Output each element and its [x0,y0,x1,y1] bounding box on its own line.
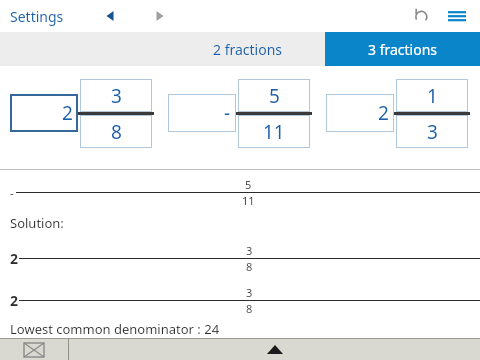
button[interactable]: Next [146,2,174,30]
staticText: 5 [269,83,280,109]
button[interactable]: 8 [80,115,152,148]
staticText: 8 [246,301,253,316]
staticText: 11 [242,193,255,208]
staticText: 8 [111,119,122,145]
button[interactable]: Undo [406,1,436,31]
button[interactable]: 11 [238,115,310,148]
staticText: 8 [246,259,253,274]
staticText: 2 [10,249,19,268]
staticText: 3 [427,119,438,145]
button[interactable]: 3 fractions [325,32,480,66]
staticText: 2 [378,100,389,126]
button[interactable]: - [168,94,236,132]
button[interactable]: 2 [10,94,78,132]
staticText: 11 [263,119,285,145]
button[interactable]: 3 [80,79,152,112]
staticText: Settings [10,7,64,26]
button[interactable]: Mail [0,339,68,360]
button[interactable]: Previous [96,2,124,30]
button[interactable]: Expand [69,339,480,360]
staticText: Lowest common denominator : 24 [10,320,220,338]
button[interactable]: Settings [0,3,74,30]
button[interactable]: Menu [442,1,472,31]
button[interactable]: 1 [396,79,468,112]
staticText: 2 [10,291,19,310]
button[interactable]: 2 fractions [171,32,325,66]
staticText: 3 [246,285,253,300]
staticText: - [224,100,231,126]
button[interactable]: 3 [396,115,468,148]
staticText: 5 [245,177,252,192]
staticText: 2 [62,100,73,126]
staticText: 3 fractions [368,40,438,59]
staticText: 1 [427,83,438,109]
staticText: 3 [246,243,253,258]
button[interactable]: 2 [326,94,394,132]
staticText: Solution: [10,214,64,232]
staticText: 3 [111,83,122,109]
button[interactable]: 5 [238,79,310,112]
staticText: - [10,185,14,200]
staticText: 2 fractions [213,40,283,59]
